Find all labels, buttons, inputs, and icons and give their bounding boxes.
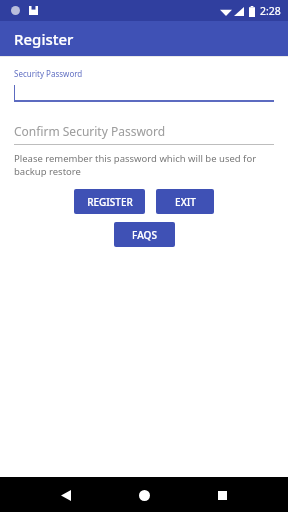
button[interactable]: Back: [52, 481, 80, 509]
staticText: 2:28: [260, 4, 281, 18]
staticText: REGISTER: [87, 195, 133, 209]
button[interactable]: Confirm Security Password: [14, 123, 274, 145]
staticText: Please remember this password which will…: [14, 152, 274, 178]
button[interactable]: Home: [130, 481, 158, 509]
staticText: Register: [14, 29, 74, 49]
button[interactable]: REGISTER: [74, 189, 145, 214]
button[interactable]: EXIT: [156, 189, 214, 214]
button[interactable]: Recent apps: [208, 481, 236, 509]
staticText: EXIT: [175, 195, 196, 209]
staticText: Confirm Security Password: [14, 123, 166, 139]
button[interactable]: Security Password: [14, 68, 274, 102]
staticText: Security Password: [14, 68, 83, 79]
button[interactable]: FAQS: [114, 222, 175, 247]
staticText: FAQS: [132, 228, 157, 242]
